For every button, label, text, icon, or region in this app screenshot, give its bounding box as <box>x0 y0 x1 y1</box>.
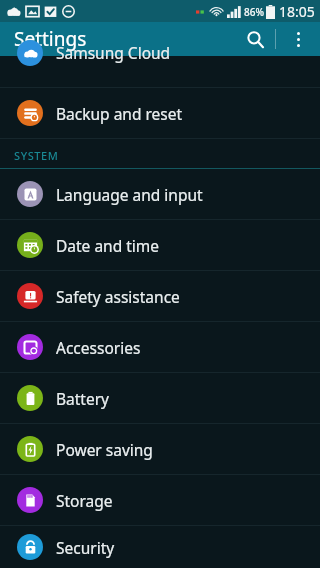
staticText: Power saving <box>56 439 153 460</box>
button[interactable]: More options <box>276 22 320 56</box>
button[interactable]: Security <box>0 526 320 568</box>
button[interactable]: Battery <box>0 373 320 423</box>
button[interactable]: Language and input <box>0 169 320 219</box>
staticText: Language and input <box>56 184 203 205</box>
staticText: SYSTEM <box>14 148 59 163</box>
button[interactable]: Power saving <box>0 424 320 474</box>
staticText: Backup and reset <box>56 103 183 124</box>
staticText: 86% <box>244 5 264 19</box>
staticText: Safety assistance <box>56 286 180 307</box>
button[interactable]: Safety assistance <box>0 271 320 321</box>
staticText: Samsung Cloud <box>56 42 171 63</box>
staticText: 18:05 <box>279 2 315 21</box>
button[interactable]: Storage <box>0 475 320 525</box>
button[interactable]: Date and time <box>0 220 320 270</box>
button[interactable]: Backup and reset <box>0 88 320 138</box>
staticText: Security <box>56 537 115 558</box>
staticText: Battery <box>56 388 110 409</box>
staticText: Date and time <box>56 235 160 256</box>
staticText: Accessories <box>56 337 141 358</box>
staticText: Storage <box>56 490 113 511</box>
staticText: Settings <box>14 26 87 52</box>
button[interactable]: Search <box>235 22 275 56</box>
button[interactable]: Samsung Cloud <box>0 56 320 87</box>
button[interactable]: Accessories <box>0 322 320 372</box>
